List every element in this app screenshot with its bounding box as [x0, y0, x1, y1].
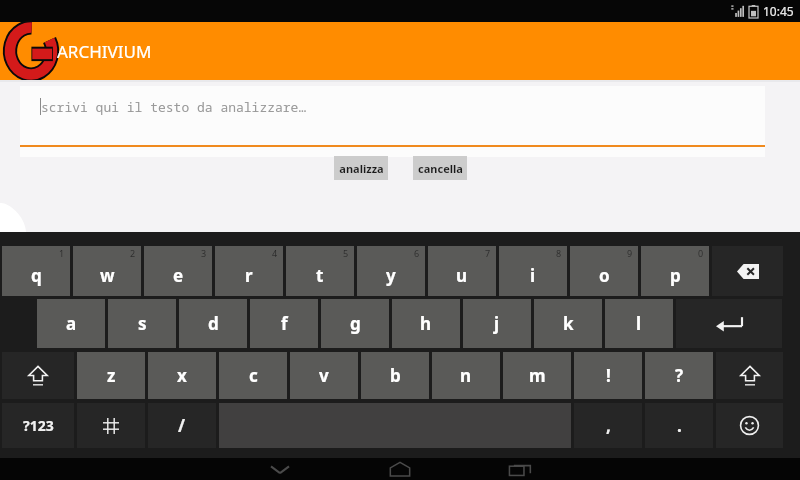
button[interactable]: 3: [144, 246, 212, 296]
staticText: scrivi qui il testo da analizzare…: [41, 98, 307, 116]
button[interactable]: l: [605, 299, 673, 348]
button[interactable]: h: [392, 299, 460, 348]
staticText: 7: [485, 247, 491, 259]
staticText: 2: [130, 247, 136, 259]
button[interactable]: 8: [499, 246, 567, 296]
staticText: z: [107, 364, 116, 387]
staticText: 6: [414, 247, 420, 259]
button[interactable]: Emoji: [716, 403, 783, 448]
staticText: r: [245, 264, 253, 287]
button[interactable]: Enter: [676, 299, 782, 348]
button[interactable]: z: [77, 352, 145, 399]
staticText: 9: [627, 247, 633, 259]
staticText: analizza: [339, 161, 384, 176]
button[interactable]: 6: [357, 246, 425, 296]
button[interactable]: .: [645, 403, 713, 448]
button[interactable]: Shift: [2, 352, 74, 399]
staticText: 10:45: [763, 3, 794, 19]
button[interactable]: g: [321, 299, 389, 348]
staticText: i: [530, 264, 536, 287]
button[interactable]: b: [361, 352, 429, 399]
staticText: b: [390, 364, 401, 387]
staticText: 8: [556, 247, 562, 259]
button[interactable]: analizza: [334, 156, 388, 180]
staticText: l: [636, 312, 642, 335]
staticText: ARCHIVIUM: [57, 40, 152, 63]
button[interactable]: 2: [73, 246, 141, 296]
staticText: x: [177, 364, 187, 387]
staticText: j: [494, 312, 500, 335]
button[interactable]: 0: [641, 246, 709, 296]
staticText: s: [138, 312, 147, 335]
staticText: q: [31, 264, 42, 287]
button[interactable]: scrivi qui il testo da analizzare…: [20, 86, 765, 150]
staticText: n: [460, 364, 472, 387]
staticText: c: [249, 364, 258, 387]
button[interactable]: Shift: [716, 352, 783, 399]
button[interactable]: n: [432, 352, 500, 399]
button[interactable]: 1: [2, 246, 70, 296]
staticText: cancella: [418, 161, 463, 176]
button[interactable]: v: [290, 352, 358, 399]
staticText: t: [316, 264, 324, 287]
staticText: a: [66, 312, 77, 335]
button[interactable]: m: [503, 352, 571, 399]
staticText: w: [100, 264, 115, 287]
button[interactable]: 9: [570, 246, 638, 296]
staticText: 1: [59, 247, 65, 259]
staticText: o: [599, 264, 610, 287]
staticText: h: [420, 312, 432, 335]
staticText: 4: [272, 247, 278, 259]
button[interactable]: 5: [286, 246, 354, 296]
staticText: 0: [698, 247, 704, 259]
staticText: k: [563, 312, 574, 335]
button[interactable]: Input settings: [77, 403, 145, 448]
staticText: v: [319, 364, 329, 387]
button[interactable]: x: [148, 352, 216, 399]
staticText: /: [178, 414, 186, 437]
button[interactable]: Hide keyboard: [250, 458, 310, 480]
button[interactable]: !: [574, 352, 642, 399]
staticText: 3: [201, 247, 207, 259]
staticText: 5: [343, 247, 349, 259]
staticText: d: [208, 312, 219, 335]
staticText: g: [350, 312, 361, 335]
button[interactable]: 4: [215, 246, 283, 296]
staticText: m: [529, 364, 546, 387]
staticText: y: [386, 264, 396, 287]
button[interactable]: Recent apps: [490, 458, 550, 480]
button[interactable]: k: [534, 299, 602, 348]
staticText: p: [670, 264, 681, 287]
staticText: ?: [675, 364, 684, 387]
staticText: f: [281, 312, 288, 335]
staticText: u: [456, 264, 468, 287]
button[interactable]: f: [250, 299, 318, 348]
button[interactable]: a: [37, 299, 105, 348]
staticText: e: [173, 264, 184, 287]
button[interactable]: ?123: [2, 403, 74, 448]
button[interactable]: ?: [645, 352, 713, 399]
button[interactable]: /: [148, 403, 216, 448]
button[interactable]: Backspace: [712, 246, 783, 296]
button[interactable]: s: [108, 299, 176, 348]
staticText: !: [606, 364, 611, 387]
staticText: ?123: [23, 416, 54, 435]
button[interactable]: 7: [428, 246, 496, 296]
staticText: .: [677, 414, 682, 437]
button[interactable]: c: [219, 352, 287, 399]
button[interactable]: ,: [574, 403, 642, 448]
button[interactable]: cancella: [413, 156, 467, 180]
button[interactable]: d: [179, 299, 247, 348]
staticText: ,: [606, 414, 611, 437]
button[interactable]: Home: [370, 458, 430, 480]
button[interactable]: j: [463, 299, 531, 348]
